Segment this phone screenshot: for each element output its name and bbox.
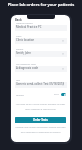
button[interactable]: Test [11, 79, 70, 91]
staticText: Test [16, 79, 21, 82]
staticText: A diagnosis code [16, 66, 39, 70]
staticText: Medical practice [16, 22, 33, 25]
staticText: fasting [16, 93, 24, 96]
staticText: ICD diagnosis code [16, 63, 36, 66]
staticText: Clinic location [16, 38, 35, 42]
staticText: Generic send-collect Test 05/18/2018 [16, 82, 65, 86]
staticText: Provider and Content technology services… [11, 126, 70, 129]
button[interactable]: Clinic [11, 35, 70, 47]
button[interactable]: Patient [11, 48, 70, 60]
staticText: Patient [16, 48, 24, 51]
button[interactable]: Medical practice [11, 22, 70, 34]
staticText: Smith, John [16, 51, 31, 55]
button[interactable]: fasting [16, 92, 66, 97]
staticText: Clinic [16, 35, 22, 38]
staticText: Place lab orders for your patients [0, 2, 82, 8]
staticText: STAT [54, 93, 59, 96]
staticText: tests. Register at labcorp.com [11, 108, 70, 111]
button[interactable]: ICD diagnosis code [11, 63, 70, 75]
staticText: Order Tests [33, 118, 48, 122]
button[interactable]: Back [15, 18, 22, 22]
staticText: You must be an ACTIVE Cerner provider to… [11, 103, 70, 106]
staticText: 2018 Laboratory Corporation of America [11, 131, 70, 134]
staticText: Medical Practice PC [16, 25, 42, 29]
button[interactable]: Order Tests [15, 117, 66, 123]
